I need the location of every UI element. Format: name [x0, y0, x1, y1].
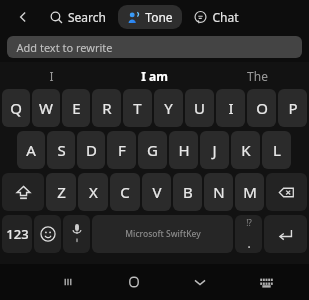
button[interactable]: Z: [46, 173, 76, 211]
staticText: U: [194, 98, 205, 118]
staticText: The: [247, 68, 268, 84]
button[interactable]: Backspace: [266, 173, 307, 211]
staticText: R: [102, 98, 112, 118]
button[interactable]: X: [78, 173, 108, 211]
button[interactable]: H: [169, 131, 198, 169]
button[interactable]: The: [206, 62, 309, 89]
staticText: L: [273, 140, 281, 160]
button[interactable]: V: [142, 173, 171, 211]
staticText: O: [256, 98, 268, 118]
button[interactable]: K: [231, 131, 260, 169]
staticText: .: [247, 235, 251, 251]
button[interactable]: D: [77, 131, 105, 169]
staticText: Microsoft SwiftKey: [125, 228, 201, 240]
button[interactable]: R: [92, 89, 121, 127]
button[interactable]: Search: [46, 6, 110, 28]
staticText: J: [212, 140, 217, 160]
staticText: V: [152, 182, 162, 202]
button[interactable]: Shift: [2, 173, 44, 211]
button[interactable]: I: [0, 62, 103, 89]
staticText: G: [147, 140, 158, 160]
button[interactable]: B: [173, 173, 202, 211]
button[interactable]: P: [278, 89, 307, 127]
button[interactable]: I am: [103, 62, 206, 89]
staticText: I: [228, 98, 234, 118]
staticText: M: [243, 182, 257, 202]
staticText: Y: [164, 98, 173, 118]
button[interactable]: U: [185, 89, 214, 127]
staticText: C: [120, 182, 130, 202]
button[interactable]: Emoji: [34, 215, 61, 253]
staticText: N: [213, 182, 225, 202]
button[interactable]: W: [32, 89, 60, 127]
button[interactable]: Voice input: [63, 215, 90, 253]
button[interactable]: N: [204, 173, 233, 211]
staticText: I am: [141, 68, 168, 84]
staticText: H: [178, 140, 190, 160]
button[interactable]: C: [110, 173, 140, 211]
staticText: Search: [68, 9, 106, 25]
button[interactable]: Period: [235, 215, 262, 253]
button[interactable]: G: [138, 131, 167, 169]
staticText: E: [72, 98, 81, 118]
button[interactable]: S: [47, 131, 75, 169]
staticText: A: [26, 140, 36, 160]
staticText: X: [89, 182, 98, 202]
button[interactable]: Hide keyboard: [167, 264, 233, 300]
staticText: 123: [6, 225, 29, 243]
staticText: Q: [10, 98, 22, 118]
button[interactable]: O: [247, 89, 276, 127]
staticText: P: [288, 98, 298, 118]
button[interactable]: Switch keyboard: [233, 264, 299, 300]
button[interactable]: Home: [101, 264, 167, 300]
button[interactable]: 123: [2, 215, 32, 253]
button[interactable]: Add text to rewrite: [7, 36, 302, 58]
button[interactable]: L: [262, 131, 291, 169]
staticText: Chat: [212, 9, 239, 25]
staticText: I: [49, 68, 54, 84]
button[interactable]: Chat: [190, 6, 243, 28]
button[interactable]: A: [17, 131, 45, 169]
staticText: F: [118, 140, 126, 160]
staticText: Z: [57, 182, 66, 202]
staticText: Tone: [145, 9, 173, 25]
button[interactable]: T: [123, 89, 152, 127]
button[interactable]: Back: [12, 6, 34, 28]
button[interactable]: F: [107, 131, 136, 169]
button[interactable]: Y: [154, 89, 183, 127]
staticText: K: [241, 140, 251, 160]
button[interactable]: J: [200, 131, 229, 169]
staticText: Add text to rewrite: [16, 40, 113, 55]
staticText: S: [57, 140, 66, 160]
button[interactable]: Recent apps: [35, 264, 101, 300]
staticText: !?: [246, 217, 252, 228]
staticText: D: [86, 140, 97, 160]
button[interactable]: M: [235, 173, 264, 211]
button[interactable]: I: [216, 89, 245, 127]
button[interactable]: Enter: [264, 215, 307, 253]
button[interactable]: Q: [2, 89, 30, 127]
staticText: B: [183, 182, 193, 202]
button[interactable]: Microsoft SwiftKey: [92, 215, 233, 253]
staticText: T: [133, 98, 142, 118]
staticText: W: [39, 98, 53, 118]
button[interactable]: E: [62, 89, 90, 127]
button[interactable]: Tone: [118, 5, 182, 29]
